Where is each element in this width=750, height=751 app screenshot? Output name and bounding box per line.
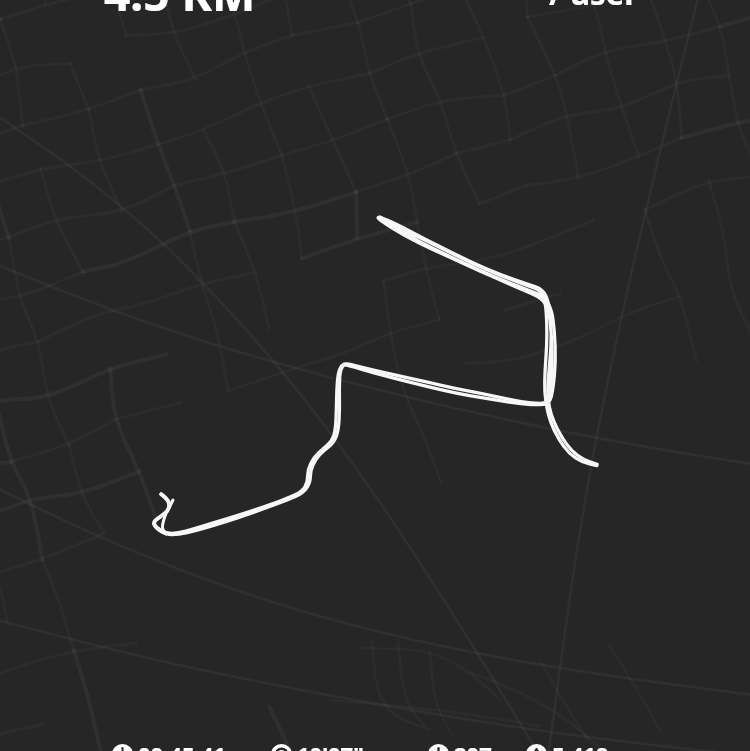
staticText: 207 [454, 739, 492, 751]
staticText: 10'07" [297, 739, 364, 751]
staticText: 4.5 KM [104, 0, 256, 25]
other: Pace [271, 744, 292, 751]
other: Calories [428, 744, 449, 751]
button[interactable]: Duration [112, 739, 226, 751]
button[interactable]: Elevation [526, 739, 609, 751]
staticText: / user [549, 0, 639, 14]
staticText: 5.419 [552, 739, 609, 751]
staticText: 00:45:41 [138, 739, 226, 751]
button[interactable]: Calories [428, 739, 492, 751]
other: Elevation [526, 744, 547, 751]
button[interactable]: Pace [271, 739, 364, 751]
other: Duration [112, 744, 133, 751]
